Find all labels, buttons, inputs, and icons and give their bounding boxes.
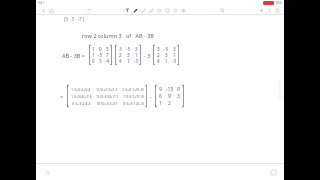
staticText: 1	[135, 52, 138, 58]
staticText: 0·3+3·1-4(-3)	[123, 101, 144, 106]
button[interactable]: Page thumbnail	[278, 84, 283, 89]
button[interactable]: Page thumbnail	[278, 79, 283, 84]
button[interactable]: Home	[47, 6, 55, 14]
staticText: 2	[168, 100, 171, 107]
button[interactable]: Favourite	[43, 168, 51, 176]
staticText: 1·3+5(4)+7·4	[71, 94, 92, 99]
staticText: 1(-5)-5(3)+7·1	[96, 94, 118, 99]
staticText: 1	[173, 52, 176, 58]
staticText: 1·3+0·1+5(-3)	[122, 87, 144, 92]
staticText: 3	[127, 52, 130, 58]
staticText: -3	[172, 58, 177, 64]
staticText: 0	[99, 46, 102, 52]
staticText: 3	[157, 46, 160, 52]
staticText: 2	[119, 52, 122, 58]
button[interactable]: Pencil	[139, 6, 147, 14]
button[interactable]: Page thumbnail	[278, 94, 283, 99]
button[interactable]: Undo	[85, 6, 93, 14]
staticText: 3	[177, 93, 180, 100]
button[interactable]: More	[265, 6, 273, 14]
staticText: 3	[165, 52, 168, 58]
staticText: row 2 column 3 of AB - 3B	[82, 32, 154, 39]
staticText: 1(-5)+0·3+5·1	[96, 87, 118, 92]
button[interactable]: Text tool	[123, 6, 131, 14]
staticText: 9	[159, 86, 162, 93]
staticText: 3	[119, 46, 122, 52]
staticText: =	[60, 93, 64, 100]
staticText: 0·3+3·2-4·4	[72, 101, 91, 106]
staticText: 9	[177, 86, 180, 93]
staticText: 9:41	[38, 1, 44, 5]
staticText: -5	[126, 46, 131, 52]
staticText: 0	[92, 58, 95, 64]
staticText: 9	[168, 93, 171, 100]
staticText: 5	[106, 46, 109, 52]
staticText: -15	[166, 86, 174, 93]
button[interactable]: Add page	[257, 6, 265, 14]
staticText: 4	[157, 58, 160, 64]
button[interactable]: Fullscreen	[269, 168, 277, 176]
button[interactable]: Back	[39, 6, 47, 14]
staticText: 7	[106, 52, 109, 58]
staticText: 1	[92, 46, 95, 52]
staticText: 1	[127, 58, 130, 64]
button[interactable]: Pen	[131, 6, 139, 14]
staticText: 3	[99, 58, 102, 64]
button[interactable]: Share	[273, 6, 281, 14]
button[interactable]: Colour	[179, 6, 187, 14]
staticText: -4	[105, 58, 110, 64]
staticText: -5	[98, 52, 103, 58]
staticText: 1	[92, 52, 95, 58]
staticText: 6	[159, 93, 162, 100]
button[interactable]: Shape	[171, 6, 179, 14]
staticText: 86%	[276, 1, 282, 5]
staticText: 1·3+0·2+5·4	[71, 87, 91, 92]
button[interactable]: Lasso	[163, 6, 171, 14]
staticText: -5	[164, 46, 169, 52]
staticText: [0 3 -7 ]	[64, 16, 85, 22]
button[interactable]: Eraser	[155, 6, 163, 14]
staticText: 2	[157, 52, 160, 58]
staticText: 3	[135, 46, 138, 52]
staticText: 1	[159, 100, 162, 107]
staticText: 1·3-5·1+7(-3)	[123, 94, 144, 99]
button[interactable]: Highlighter	[147, 6, 155, 14]
staticText: 4	[119, 58, 122, 64]
staticText: 3	[173, 46, 176, 52]
staticText: AB - 3B =	[62, 52, 86, 59]
staticText: - 3	[144, 52, 151, 59]
button[interactable]: Page thumbnail	[278, 89, 283, 94]
staticText: 0(-5)+3·3-4·1	[97, 101, 118, 106]
staticText: -3	[134, 58, 139, 64]
button[interactable]: Search	[218, 6, 226, 14]
staticText: 1	[165, 58, 168, 64]
staticText: -	[150, 93, 152, 100]
